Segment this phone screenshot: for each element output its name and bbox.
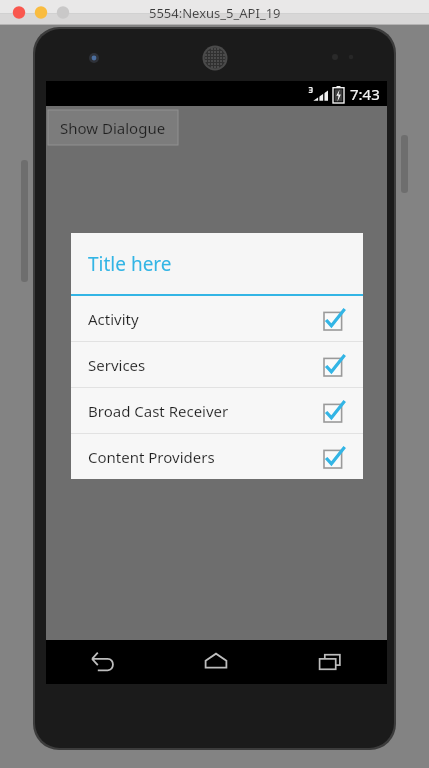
staticText: Services (88, 355, 324, 375)
button[interactable]: Home (159, 640, 273, 684)
staticText: 5554:Nexus_5_API_19 (149, 4, 281, 22)
staticText: Broad Cast Receiver (88, 401, 324, 421)
button[interactable]: Services (71, 342, 363, 387)
staticText: Activity (88, 309, 324, 329)
button[interactable]: Back (46, 640, 159, 684)
staticText: Title here (88, 251, 172, 277)
button[interactable]: Content Providers (71, 434, 363, 479)
staticText: Show Dialogue (60, 118, 166, 138)
button[interactable]: Recent apps (273, 640, 387, 684)
staticText: 7:43 (350, 84, 380, 104)
staticText: Content Providers (88, 447, 324, 467)
button[interactable]: Broad Cast Receiver (71, 388, 363, 433)
button[interactable]: Show Dialogue (48, 110, 178, 145)
button[interactable]: Activity (71, 296, 363, 341)
